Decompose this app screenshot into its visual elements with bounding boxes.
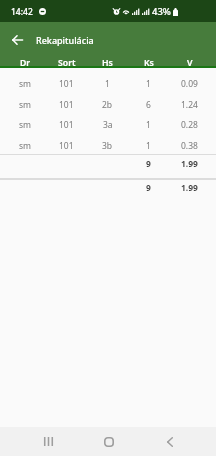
staticText: Dr	[20, 57, 31, 69]
staticText: 101	[59, 119, 74, 131]
button[interactable]: Back	[139, 427, 200, 456]
staticText: sm	[19, 99, 32, 111]
staticText: 101	[59, 99, 74, 111]
staticText: 101	[59, 140, 74, 152]
staticText: 1	[146, 140, 151, 152]
staticText: Rekapitulácia	[36, 34, 94, 46]
button[interactable]: sm	[0, 94, 216, 115]
staticText: 9	[146, 158, 151, 170]
staticText: 3b	[102, 140, 113, 152]
staticText: 1.24	[181, 99, 198, 111]
staticText: 1.99	[181, 182, 198, 194]
staticText: 1	[146, 119, 151, 131]
staticText: 1.99	[181, 158, 198, 170]
staticText: 43%	[152, 5, 171, 18]
staticText: 14:42	[11, 6, 33, 18]
staticText: 2b	[102, 99, 113, 111]
staticText: 1	[105, 78, 110, 90]
button[interactable]: sm	[0, 114, 216, 135]
button[interactable]: sm	[0, 135, 216, 156]
staticText: 0.28	[181, 119, 198, 131]
button[interactable]: sm	[0, 73, 216, 94]
staticText: 1	[146, 78, 151, 90]
staticText: 9	[146, 182, 151, 194]
staticText: Hs	[102, 57, 113, 69]
staticText: sm	[19, 78, 32, 90]
button[interactable]: Home	[78, 427, 139, 456]
staticText: sm	[19, 119, 32, 131]
staticText: 0.09	[181, 78, 198, 90]
staticText: 6	[146, 99, 151, 111]
staticText: 3a	[103, 119, 113, 131]
staticText: V	[187, 57, 193, 69]
button[interactable]: Recent apps	[18, 427, 78, 456]
button[interactable]: Back	[3, 26, 31, 54]
staticText: 0.38	[181, 140, 198, 152]
staticText: 101	[59, 78, 74, 90]
staticText: Sort	[58, 57, 76, 69]
staticText: sm	[19, 140, 32, 152]
staticText: Ks	[144, 57, 154, 69]
